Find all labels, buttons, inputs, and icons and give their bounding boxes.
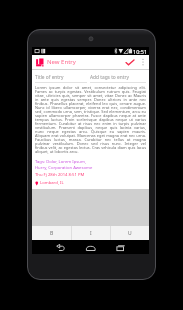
staticText: Tags: Dolor, Lorem Ipsum, Hurry, Corpora… [35, 159, 93, 170]
staticText: Title of entry [35, 74, 64, 81]
button[interactable]: Title of entry [35, 74, 87, 83]
staticText: U [128, 230, 132, 237]
button[interactable]: Home [80, 240, 102, 254]
staticText: Add tags to entry [90, 74, 129, 81]
staticText: Lombard, IL [40, 180, 64, 186]
staticText: I [90, 230, 92, 237]
button[interactable]: B [32, 226, 71, 240]
button[interactable]: Lorem ipsum dolor sit amet, consectetur … [35, 85, 146, 155]
button[interactable]: I [72, 226, 110, 240]
button[interactable]: U [111, 226, 149, 240]
button[interactable]: Add tags to entry [90, 74, 146, 83]
staticText: 10:51 [133, 48, 148, 55]
staticText: New Entry [47, 58, 76, 66]
staticText: B [50, 230, 54, 237]
staticText: Thu Fj 28th 2014 8:51 PM [35, 172, 85, 178]
button[interactable]: Recent apps [110, 240, 132, 254]
button[interactable]: Save entry [122, 55, 138, 69]
button[interactable]: More options [138, 55, 148, 69]
button[interactable]: Back [50, 240, 72, 254]
